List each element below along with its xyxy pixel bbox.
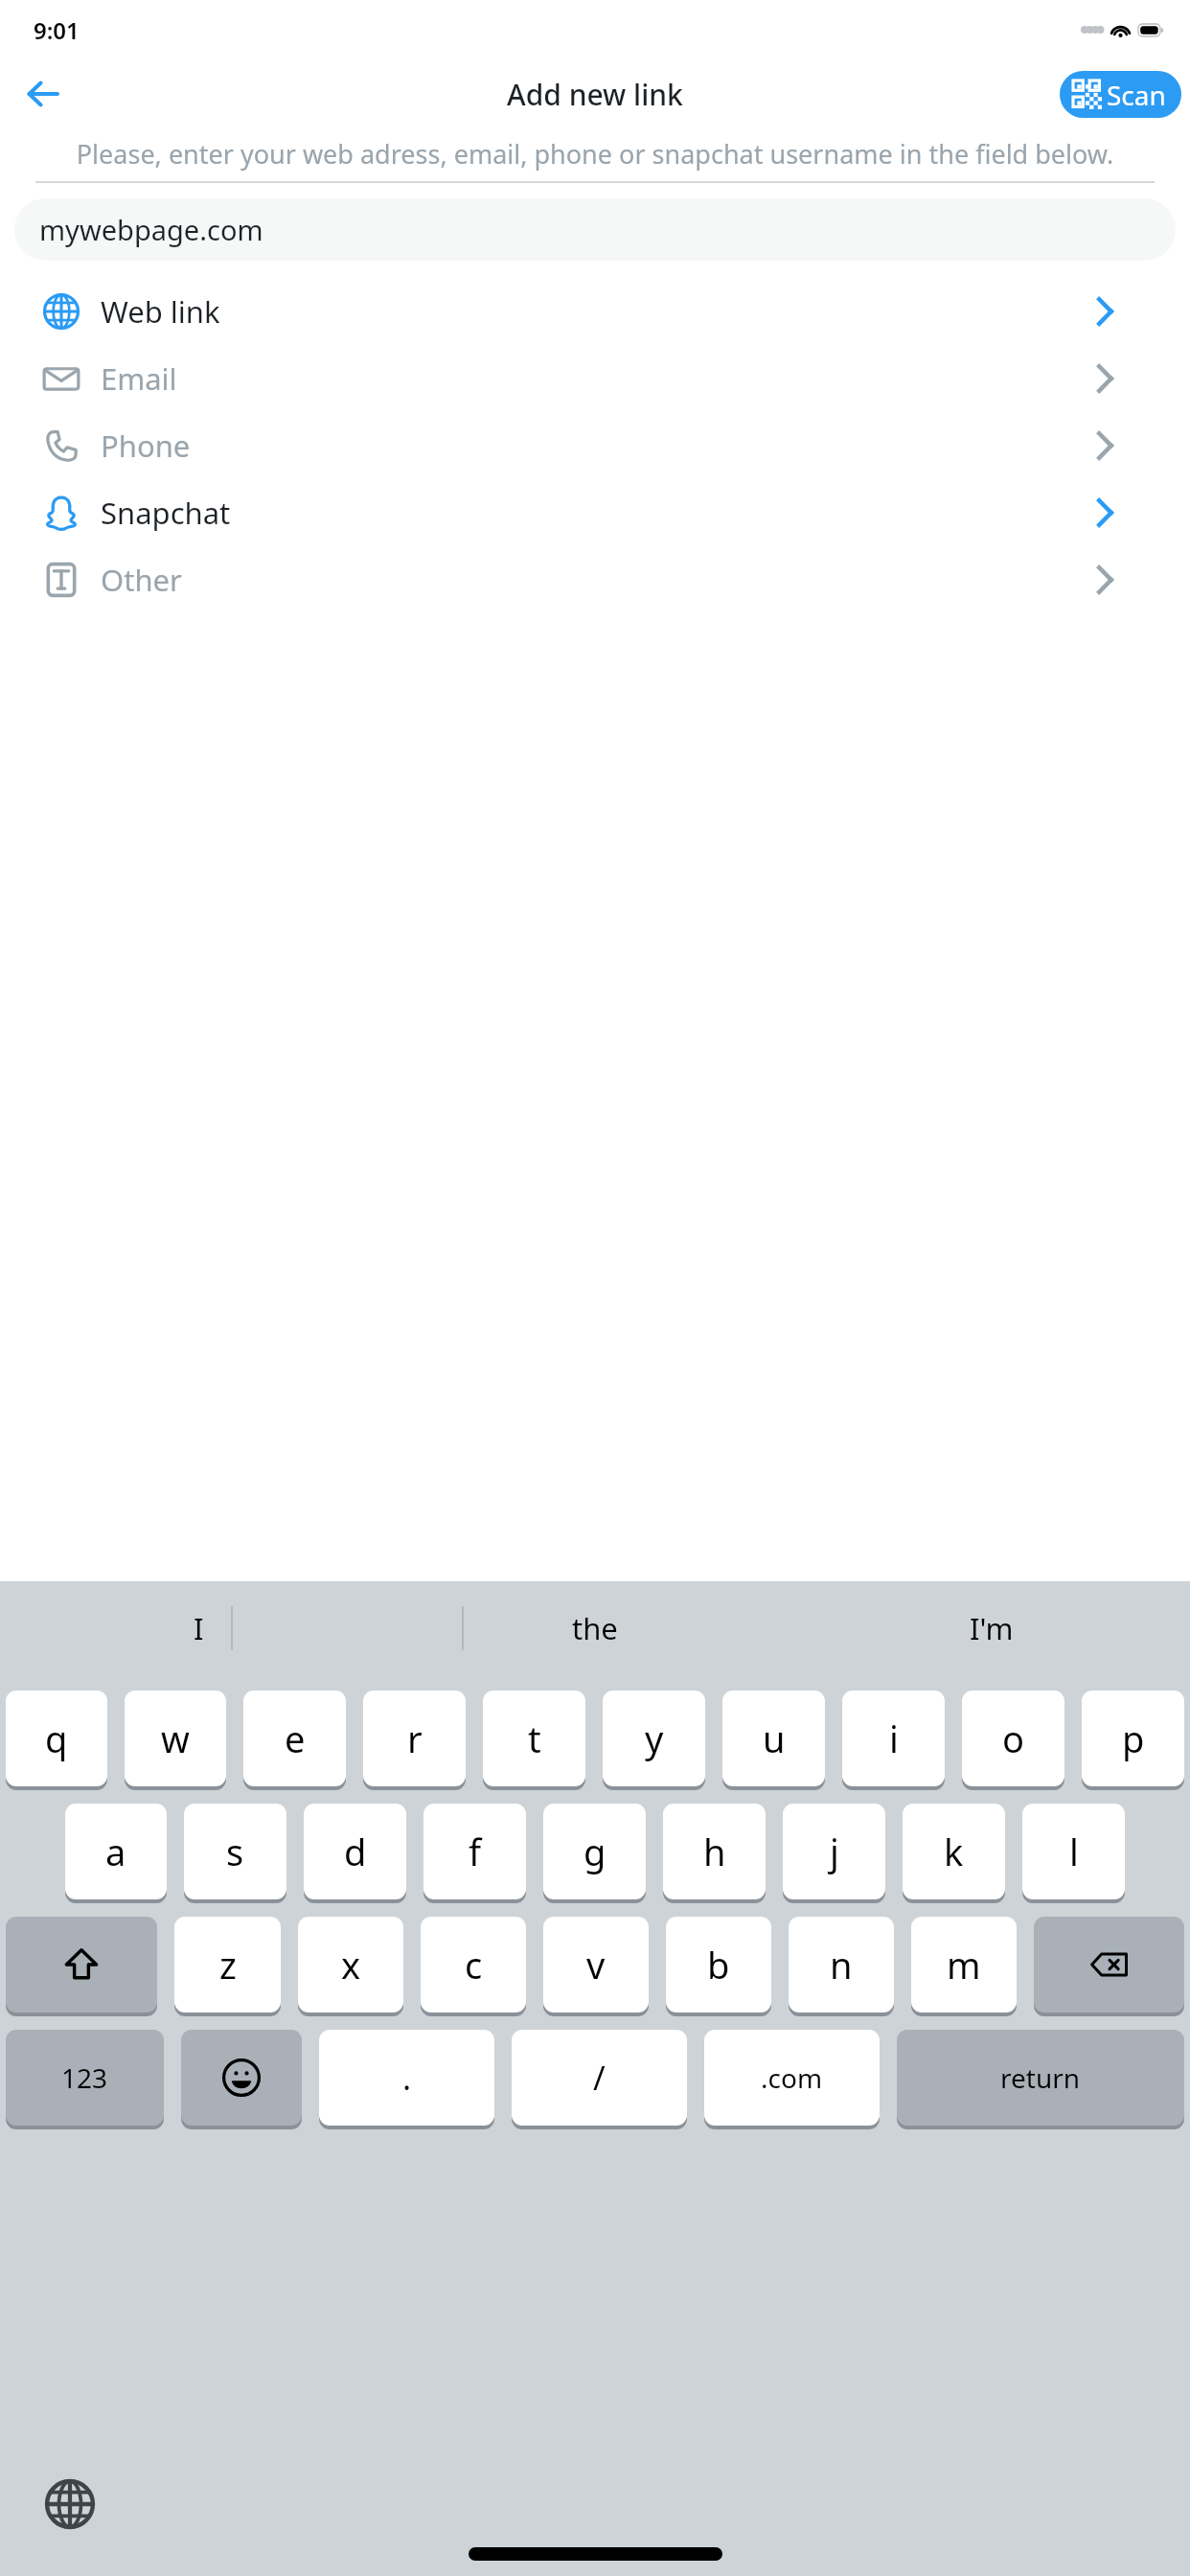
button[interactable]: d [304, 1804, 406, 1899]
staticText: Email [101, 358, 177, 399]
button[interactable]: Back [13, 64, 73, 124]
staticText: 123 [61, 2059, 108, 2096]
staticText: d [344, 1827, 367, 1876]
button[interactable]: Scan [1060, 71, 1181, 118]
button[interactable]: g [543, 1804, 646, 1899]
staticText: r [407, 1713, 423, 1763]
button[interactable]: Web link [0, 278, 1190, 345]
staticText: Add new link [507, 75, 683, 114]
button[interactable]: k [903, 1804, 1005, 1899]
button[interactable]: return [897, 2030, 1184, 2126]
button[interactable]: 123 [6, 2030, 164, 2126]
button[interactable]: Backspace [1034, 1917, 1184, 2012]
button[interactable]: I [0, 1581, 397, 1675]
staticText: Other [101, 560, 182, 600]
staticText: 9:01 [34, 14, 80, 46]
staticText: Phone [101, 425, 191, 466]
button[interactable]: i [842, 1690, 945, 1786]
button[interactable]: a [65, 1804, 167, 1899]
staticText: m [947, 1940, 981, 1989]
staticText: / [593, 2056, 606, 2100]
button[interactable]: Emoji [181, 2030, 302, 2126]
button[interactable]: w [125, 1690, 226, 1786]
button[interactable]: mywebpage.com [14, 198, 1176, 261]
staticText: y [645, 1713, 664, 1763]
button[interactable]: l [1022, 1804, 1125, 1899]
button[interactable]: / [512, 2030, 687, 2126]
staticText: . [402, 2056, 412, 2100]
button[interactable]: q [6, 1690, 107, 1786]
button[interactable]: I'm [793, 1581, 1190, 1675]
button[interactable]: v [543, 1917, 649, 2012]
button[interactable]: c [421, 1917, 526, 2012]
button[interactable]: r [363, 1690, 466, 1786]
staticText: a [105, 1827, 126, 1876]
staticText: i [889, 1713, 899, 1763]
staticText: j [830, 1827, 839, 1876]
staticText: o [1002, 1713, 1024, 1763]
button[interactable]: s [184, 1804, 286, 1899]
staticText: I [194, 1608, 204, 1648]
button[interactable]: Email [0, 345, 1190, 412]
staticText: return [1000, 2059, 1081, 2096]
staticText: l [1069, 1827, 1079, 1876]
button[interactable]: o [962, 1690, 1064, 1786]
staticText: I'm [970, 1608, 1014, 1648]
staticText: Snapchat [101, 493, 231, 533]
staticText: t [528, 1713, 541, 1763]
button[interactable]: e [243, 1690, 346, 1786]
button[interactable]: . [319, 2030, 494, 2126]
staticText: q [45, 1713, 68, 1763]
button[interactable]: Other [0, 546, 1190, 613]
staticText: k [944, 1827, 964, 1876]
button[interactable]: y [603, 1690, 705, 1786]
staticText: mywebpage.com [39, 211, 263, 248]
button[interactable]: n [789, 1917, 894, 2012]
staticText: b [707, 1940, 730, 1989]
staticText: x [341, 1940, 361, 1989]
staticText: e [285, 1713, 306, 1763]
staticText: Scan [1107, 77, 1166, 113]
button[interactable]: h [663, 1804, 766, 1899]
button[interactable]: b [666, 1917, 771, 2012]
button[interactable]: m [911, 1917, 1017, 2012]
staticText: p [1122, 1713, 1145, 1763]
staticText: h [703, 1827, 726, 1876]
button[interactable]: p [1082, 1690, 1184, 1786]
staticText: g [584, 1827, 606, 1876]
button[interactable]: Change keyboard language [36, 2471, 103, 2538]
button[interactable]: Snapchat [0, 479, 1190, 546]
button[interactable]: t [483, 1690, 585, 1786]
button[interactable]: f [423, 1804, 526, 1899]
button[interactable]: u [722, 1690, 825, 1786]
staticText: u [763, 1713, 786, 1763]
staticText: Please, enter your web adress, email, ph… [17, 136, 1173, 172]
staticText: v [586, 1940, 606, 1989]
button[interactable]: .com [704, 2030, 880, 2126]
staticText: the [572, 1608, 618, 1648]
button[interactable]: Shift [6, 1917, 157, 2012]
staticText: f [469, 1827, 482, 1876]
button[interactable]: z [174, 1917, 281, 2012]
button[interactable]: j [783, 1804, 885, 1899]
staticText: c [465, 1940, 483, 1989]
staticText: Web link [101, 291, 220, 332]
button[interactable]: Phone [0, 412, 1190, 479]
button[interactable]: x [298, 1917, 403, 2012]
staticText: w [161, 1713, 190, 1763]
staticText: .com [761, 2059, 823, 2096]
button[interactable]: the [397, 1581, 793, 1675]
staticText: s [226, 1827, 244, 1876]
staticText: z [219, 1940, 237, 1989]
staticText: n [830, 1940, 853, 1989]
